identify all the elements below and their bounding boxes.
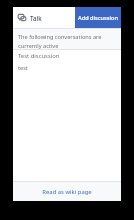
staticText: test [18, 64, 28, 72]
staticText: Read as wiki page [42, 188, 92, 196]
button[interactable]: Test discussion [13, 50, 121, 62]
other: Talk [18, 14, 26, 22]
button[interactable]: Talk [18, 7, 42, 28]
staticText: Add discussion [78, 14, 118, 22]
staticText: The following conversations are currentl… [18, 33, 112, 49]
button[interactable]: Add discussion [75, 7, 121, 28]
staticText: Talk [30, 14, 42, 22]
button[interactable]: Read as wiki page [13, 182, 121, 201]
staticText: Test discussion [18, 52, 60, 60]
button[interactable]: test [13, 62, 121, 74]
